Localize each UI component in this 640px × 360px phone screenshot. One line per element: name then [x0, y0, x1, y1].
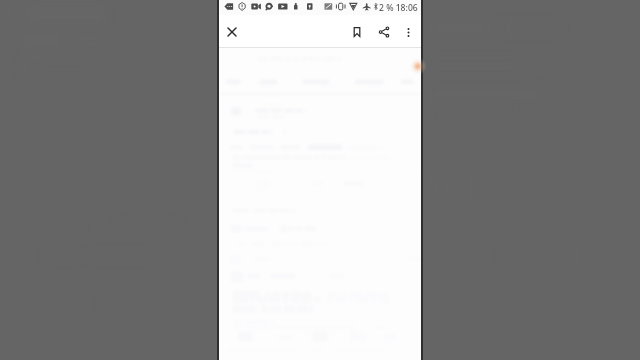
- button[interactable]: Bookmark: [346, 21, 368, 43]
- button[interactable]: More options: [397, 21, 419, 43]
- staticText: 2 % 18:06: [379, 2, 418, 14]
- button[interactable]: Close: [221, 21, 243, 43]
- button[interactable]: Compose: [399, 48, 435, 84]
- button[interactable]: Share: [373, 21, 395, 43]
